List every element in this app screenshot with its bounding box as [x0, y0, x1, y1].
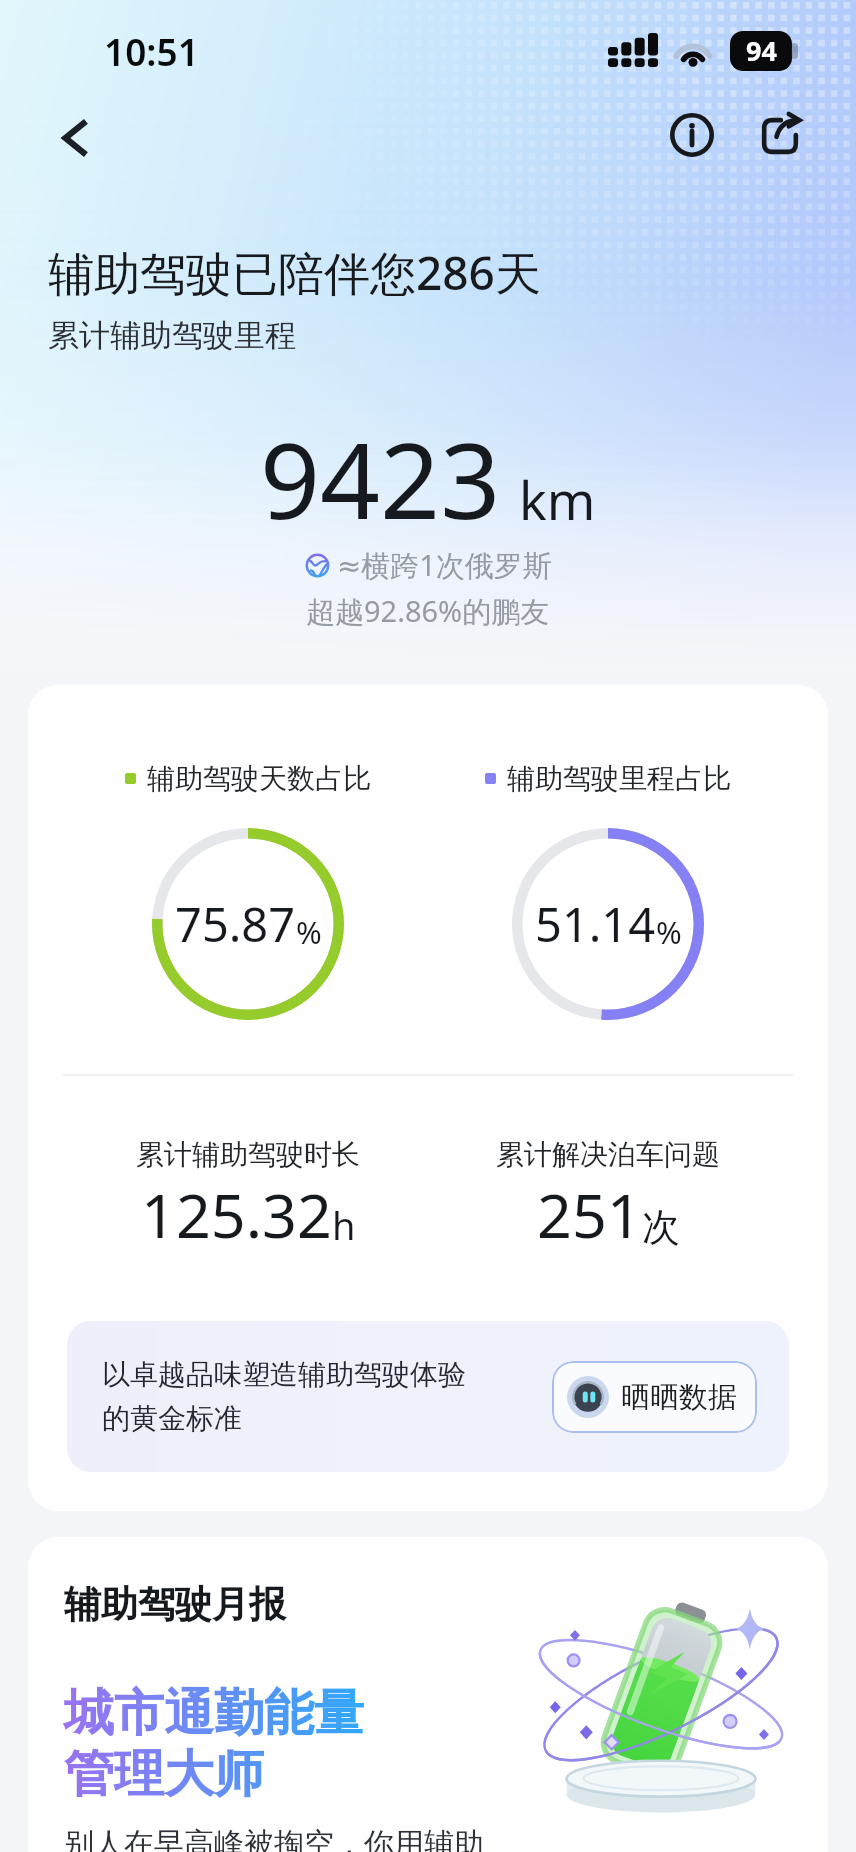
button[interactable]: Back: [46, 102, 110, 166]
button[interactable]: Share: [746, 102, 814, 170]
staticText: 75.87: [175, 892, 296, 956]
staticText: 的黄金标准: [102, 1401, 242, 1436]
staticText: h: [332, 1199, 356, 1251]
staticText: 10:51: [104, 26, 199, 76]
staticText: 超越92.86%的鹏友: [306, 591, 550, 631]
staticText: 城市通勤能量: [64, 1682, 364, 1745]
button[interactable]: Info: [658, 101, 726, 169]
staticText: 辅助驾驶月报: [64, 1581, 286, 1628]
staticText: 辅助驾驶已陪伴您286天: [48, 241, 541, 304]
staticText: 累计辅助驾驶里程: [48, 316, 296, 355]
staticText: 累计解决泊车问题: [496, 1137, 720, 1172]
staticText: km: [519, 464, 596, 535]
staticText: 次: [642, 1203, 680, 1251]
staticText: 辅助驾驶天数占比: [147, 761, 371, 796]
staticText: 9423: [260, 407, 501, 550]
staticText: %: [656, 911, 682, 953]
staticText: 251: [537, 1173, 642, 1256]
staticText: 以卓越品味塑造辅助驾驶体验: [102, 1357, 466, 1392]
staticText: 94: [746, 32, 777, 69]
button[interactable]: 晒晒数据: [552, 1361, 757, 1433]
staticText: 管理大师: [64, 1743, 264, 1806]
staticText: 别人在早高峰被掏空，你用辅助: [64, 1825, 484, 1852]
staticText: 辅助驾驶里程占比: [507, 761, 731, 796]
staticText: 125.32: [141, 1173, 332, 1256]
staticText: 晒晒数据: [621, 1379, 737, 1416]
staticText: %: [296, 911, 322, 953]
staticText: ≈横跨1次俄罗斯: [337, 545, 552, 585]
staticText: 累计辅助驾驶时长: [136, 1137, 360, 1172]
staticText: 51.14: [535, 892, 656, 956]
